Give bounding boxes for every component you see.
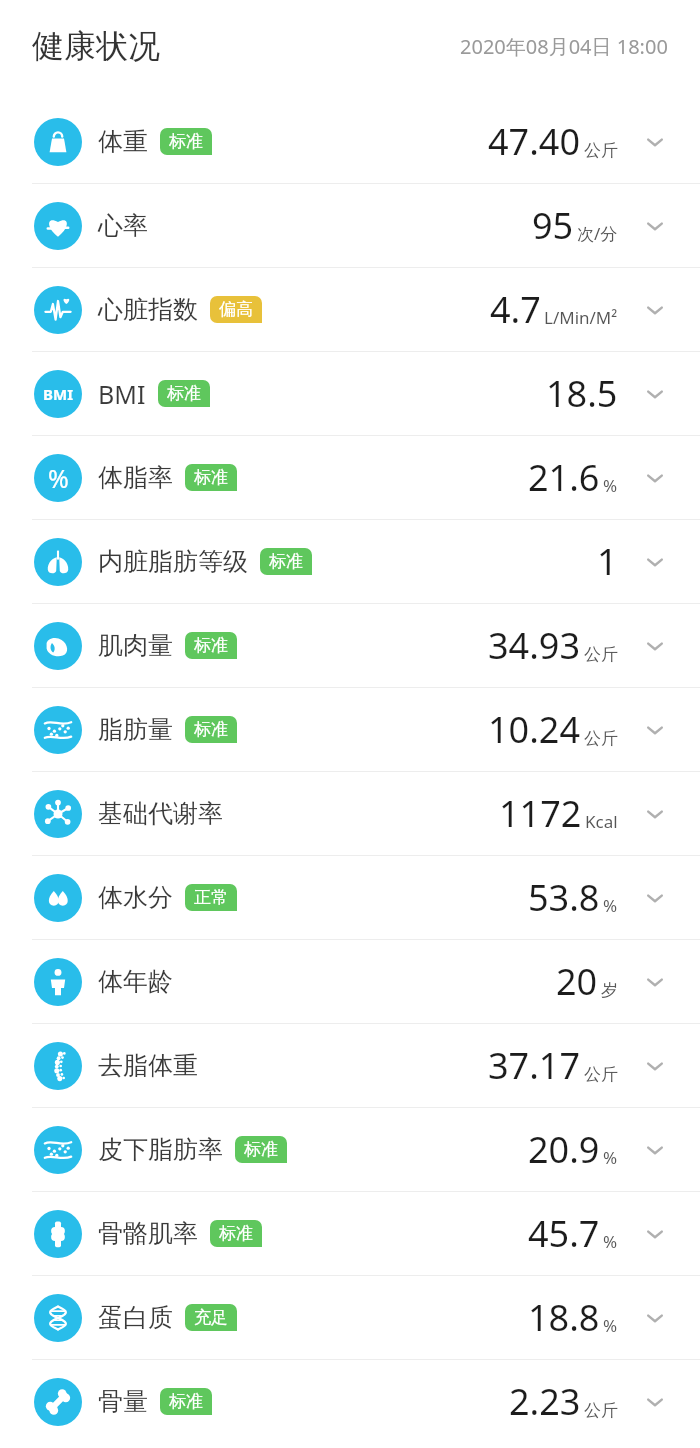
- button[interactable]: 体年龄: [0, 940, 700, 1023]
- staticText: 公斤: [584, 1064, 618, 1085]
- staticText: 体水分: [98, 882, 173, 913]
- button[interactable]: 心脏指数: [0, 268, 700, 351]
- button[interactable]: 体水分: [0, 856, 700, 939]
- button[interactable]: 骨量: [0, 1360, 700, 1443]
- staticText: 1: [597, 537, 618, 586]
- staticText: 18.8: [528, 1293, 600, 1342]
- staticText: 皮下脂肪率: [98, 1134, 223, 1165]
- staticText: 偏高: [219, 299, 253, 320]
- staticText: 体脂率: [98, 462, 173, 493]
- staticText: 公斤: [584, 728, 618, 749]
- staticText: 18.5: [546, 369, 618, 418]
- staticText: %: [603, 1146, 618, 1169]
- staticText: 标准: [219, 1223, 253, 1244]
- staticText: 心脏指数: [98, 294, 198, 325]
- staticText: 充足: [194, 1307, 228, 1328]
- button[interactable]: Expand 体重: [640, 127, 670, 157]
- staticText: %: [603, 1230, 618, 1253]
- button[interactable]: Expand 肌肉量: [640, 631, 670, 661]
- staticText: Kcal: [585, 810, 618, 833]
- staticText: %: [603, 1314, 618, 1337]
- staticText: BMI: [43, 384, 73, 404]
- staticText: 2020年08月04日 18:00: [460, 33, 668, 60]
- staticText: 标准: [269, 551, 303, 572]
- staticText: 骨量: [98, 1386, 148, 1417]
- staticText: 标准: [194, 467, 228, 488]
- staticText: 45.7: [528, 1209, 600, 1258]
- button[interactable]: Expand 体水分: [640, 883, 670, 913]
- staticText: 标准: [169, 1391, 203, 1412]
- staticText: BMI: [98, 377, 146, 411]
- button[interactable]: Expand 去脂体重: [640, 1051, 670, 1081]
- staticText: 47.40: [488, 117, 581, 166]
- staticText: 内脏脂肪等级: [98, 546, 248, 577]
- button[interactable]: Expand 体年龄: [640, 967, 670, 997]
- button[interactable]: 骨骼肌率: [0, 1192, 700, 1275]
- button[interactable]: Expand 内脏脂肪等级: [640, 547, 670, 577]
- button[interactable]: Expand 体脂率: [640, 463, 670, 493]
- staticText: 蛋白质: [98, 1302, 173, 1333]
- button[interactable]: Expand 脂肪量: [640, 715, 670, 745]
- staticText: 公斤: [584, 140, 618, 161]
- button[interactable]: Expand 皮下脂肪率: [640, 1135, 670, 1165]
- staticText: %: [48, 461, 69, 495]
- staticText: 去脂体重: [98, 1050, 198, 1081]
- staticText: L/Min/M²: [544, 306, 618, 329]
- button[interactable]: 内脏脂肪等级: [0, 520, 700, 603]
- staticText: 1172: [499, 789, 582, 838]
- staticText: %: [603, 894, 618, 917]
- button[interactable]: Expand 蛋白质: [640, 1303, 670, 1333]
- staticText: 53.8: [528, 873, 600, 922]
- staticText: 4.7: [490, 285, 541, 334]
- staticText: 21.6: [528, 453, 600, 502]
- staticText: 10.24: [488, 705, 581, 754]
- staticText: 体重: [98, 126, 148, 157]
- staticText: 基础代谢率: [98, 798, 223, 829]
- staticText: 标准: [244, 1139, 278, 1160]
- staticText: 20: [556, 957, 598, 1006]
- button[interactable]: 去脂体重: [0, 1024, 700, 1107]
- staticText: 健康状况: [32, 26, 160, 66]
- staticText: 95: [532, 201, 574, 250]
- button[interactable]: 脂肪量: [0, 688, 700, 771]
- staticText: 标准: [167, 383, 201, 404]
- staticText: 标准: [169, 131, 203, 152]
- button[interactable]: %: [0, 436, 700, 519]
- button[interactable]: 基础代谢率: [0, 772, 700, 855]
- button[interactable]: 蛋白质: [0, 1276, 700, 1359]
- button[interactable]: Expand 心率: [640, 211, 670, 241]
- button[interactable]: Expand BMI: [640, 379, 670, 409]
- staticText: 公斤: [584, 1400, 618, 1421]
- staticText: 标准: [194, 719, 228, 740]
- button[interactable]: Expand 骨骼肌率: [640, 1219, 670, 1249]
- button[interactable]: Expand 心脏指数: [640, 295, 670, 325]
- staticText: 2.23: [509, 1377, 581, 1426]
- button[interactable]: Expand 基础代谢率: [640, 799, 670, 829]
- staticText: 公斤: [584, 644, 618, 665]
- staticText: 肌肉量: [98, 630, 173, 661]
- staticText: 正常: [194, 887, 228, 908]
- staticText: 34.93: [488, 621, 581, 670]
- staticText: 岁: [601, 980, 618, 1001]
- button[interactable]: Expand 骨量: [640, 1387, 670, 1417]
- staticText: 37.17: [488, 1041, 581, 1090]
- staticText: 心率: [98, 210, 148, 241]
- button[interactable]: BMI: [0, 352, 700, 435]
- staticText: %: [603, 474, 618, 497]
- button[interactable]: 心率: [0, 184, 700, 267]
- staticText: 体年龄: [98, 966, 173, 997]
- staticText: 骨骼肌率: [98, 1218, 198, 1249]
- staticText: 标准: [194, 635, 228, 656]
- staticText: 20.9: [528, 1125, 600, 1174]
- staticText: 脂肪量: [98, 714, 173, 745]
- button[interactable]: 体重: [0, 100, 700, 183]
- button[interactable]: 皮下脂肪率: [0, 1108, 700, 1191]
- button[interactable]: 肌肉量: [0, 604, 700, 687]
- staticText: 次/分: [577, 222, 618, 245]
